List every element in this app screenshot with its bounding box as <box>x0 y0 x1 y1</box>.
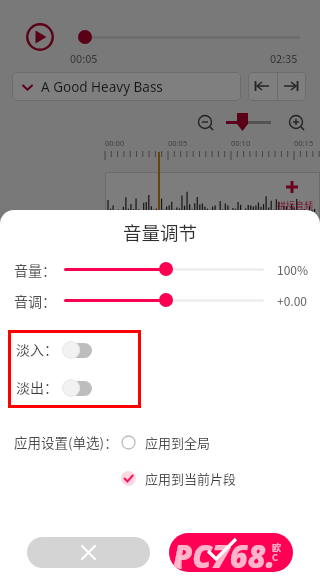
staticText: 00:00 <box>105 138 125 148</box>
staticText: 应用到当前片段 <box>145 469 237 488</box>
staticText: 欧 <box>272 541 282 554</box>
staticText: 00:15 <box>294 138 314 148</box>
staticText: 02:35 <box>270 50 298 66</box>
staticText: 拼接音频 <box>277 199 314 212</box>
button[interactable]: Cancel <box>27 537 150 568</box>
button[interactable]: 音调： <box>159 293 173 307</box>
staticText: 00:10 <box>231 138 251 148</box>
staticText: PC768. <box>173 535 276 572</box>
button[interactable]: 应用到全局 <box>121 433 211 452</box>
staticText: 音量： <box>14 260 56 280</box>
button[interactable]: 淡入： <box>60 340 93 360</box>
staticText: 00:05 <box>70 50 98 66</box>
staticText: 应用到全局 <box>145 433 211 452</box>
staticText: 00:05 <box>168 138 188 148</box>
staticText: 淡出： <box>16 377 58 397</box>
button[interactable]: 淡出： <box>60 378 93 398</box>
staticText: 音量调节 <box>123 219 198 246</box>
button[interactable]: Confirm <box>169 533 293 572</box>
staticText: 音调： <box>14 291 56 311</box>
staticText: A Good Heavy Bass <box>41 78 163 96</box>
button[interactable]: 音量： <box>159 262 173 276</box>
staticText: 淡入： <box>16 339 58 359</box>
staticText: 应用设置(单选)： <box>14 432 118 452</box>
staticText: C <box>272 551 278 564</box>
staticText: +0.00 <box>277 292 307 309</box>
button[interactable]: 应用到当前片段 <box>121 469 237 488</box>
staticText: 100% <box>277 261 309 278</box>
